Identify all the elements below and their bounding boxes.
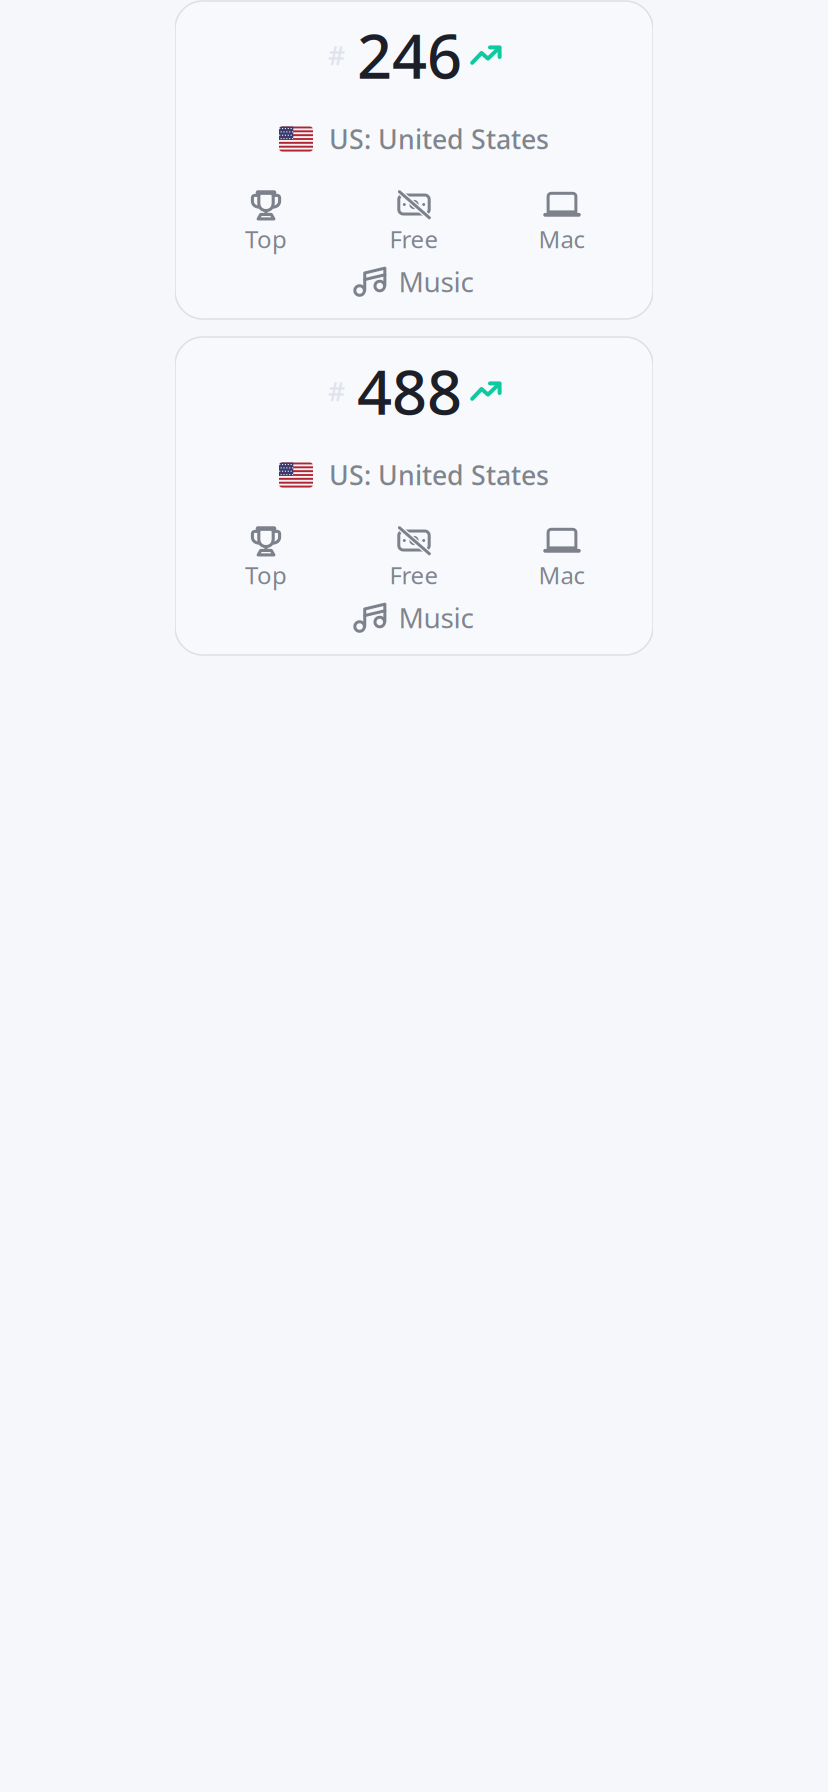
staticText: # bbox=[328, 37, 345, 73]
staticText: Free bbox=[389, 559, 438, 591]
staticText: Top bbox=[245, 223, 287, 255]
staticText: US: United States bbox=[329, 457, 549, 493]
staticText: # bbox=[328, 373, 345, 409]
staticText: Music bbox=[398, 263, 473, 300]
staticText: Mac bbox=[538, 223, 585, 255]
button[interactable]: # bbox=[175, 337, 653, 655]
staticText: 246 bbox=[357, 14, 462, 96]
staticText: Top bbox=[245, 559, 287, 591]
staticText: 488 bbox=[357, 350, 462, 432]
staticText: Mac bbox=[538, 559, 585, 591]
staticText: Music bbox=[398, 599, 473, 636]
staticText: Free bbox=[389, 223, 438, 255]
button[interactable]: # bbox=[175, 1, 653, 319]
staticText: US: United States bbox=[329, 121, 549, 157]
